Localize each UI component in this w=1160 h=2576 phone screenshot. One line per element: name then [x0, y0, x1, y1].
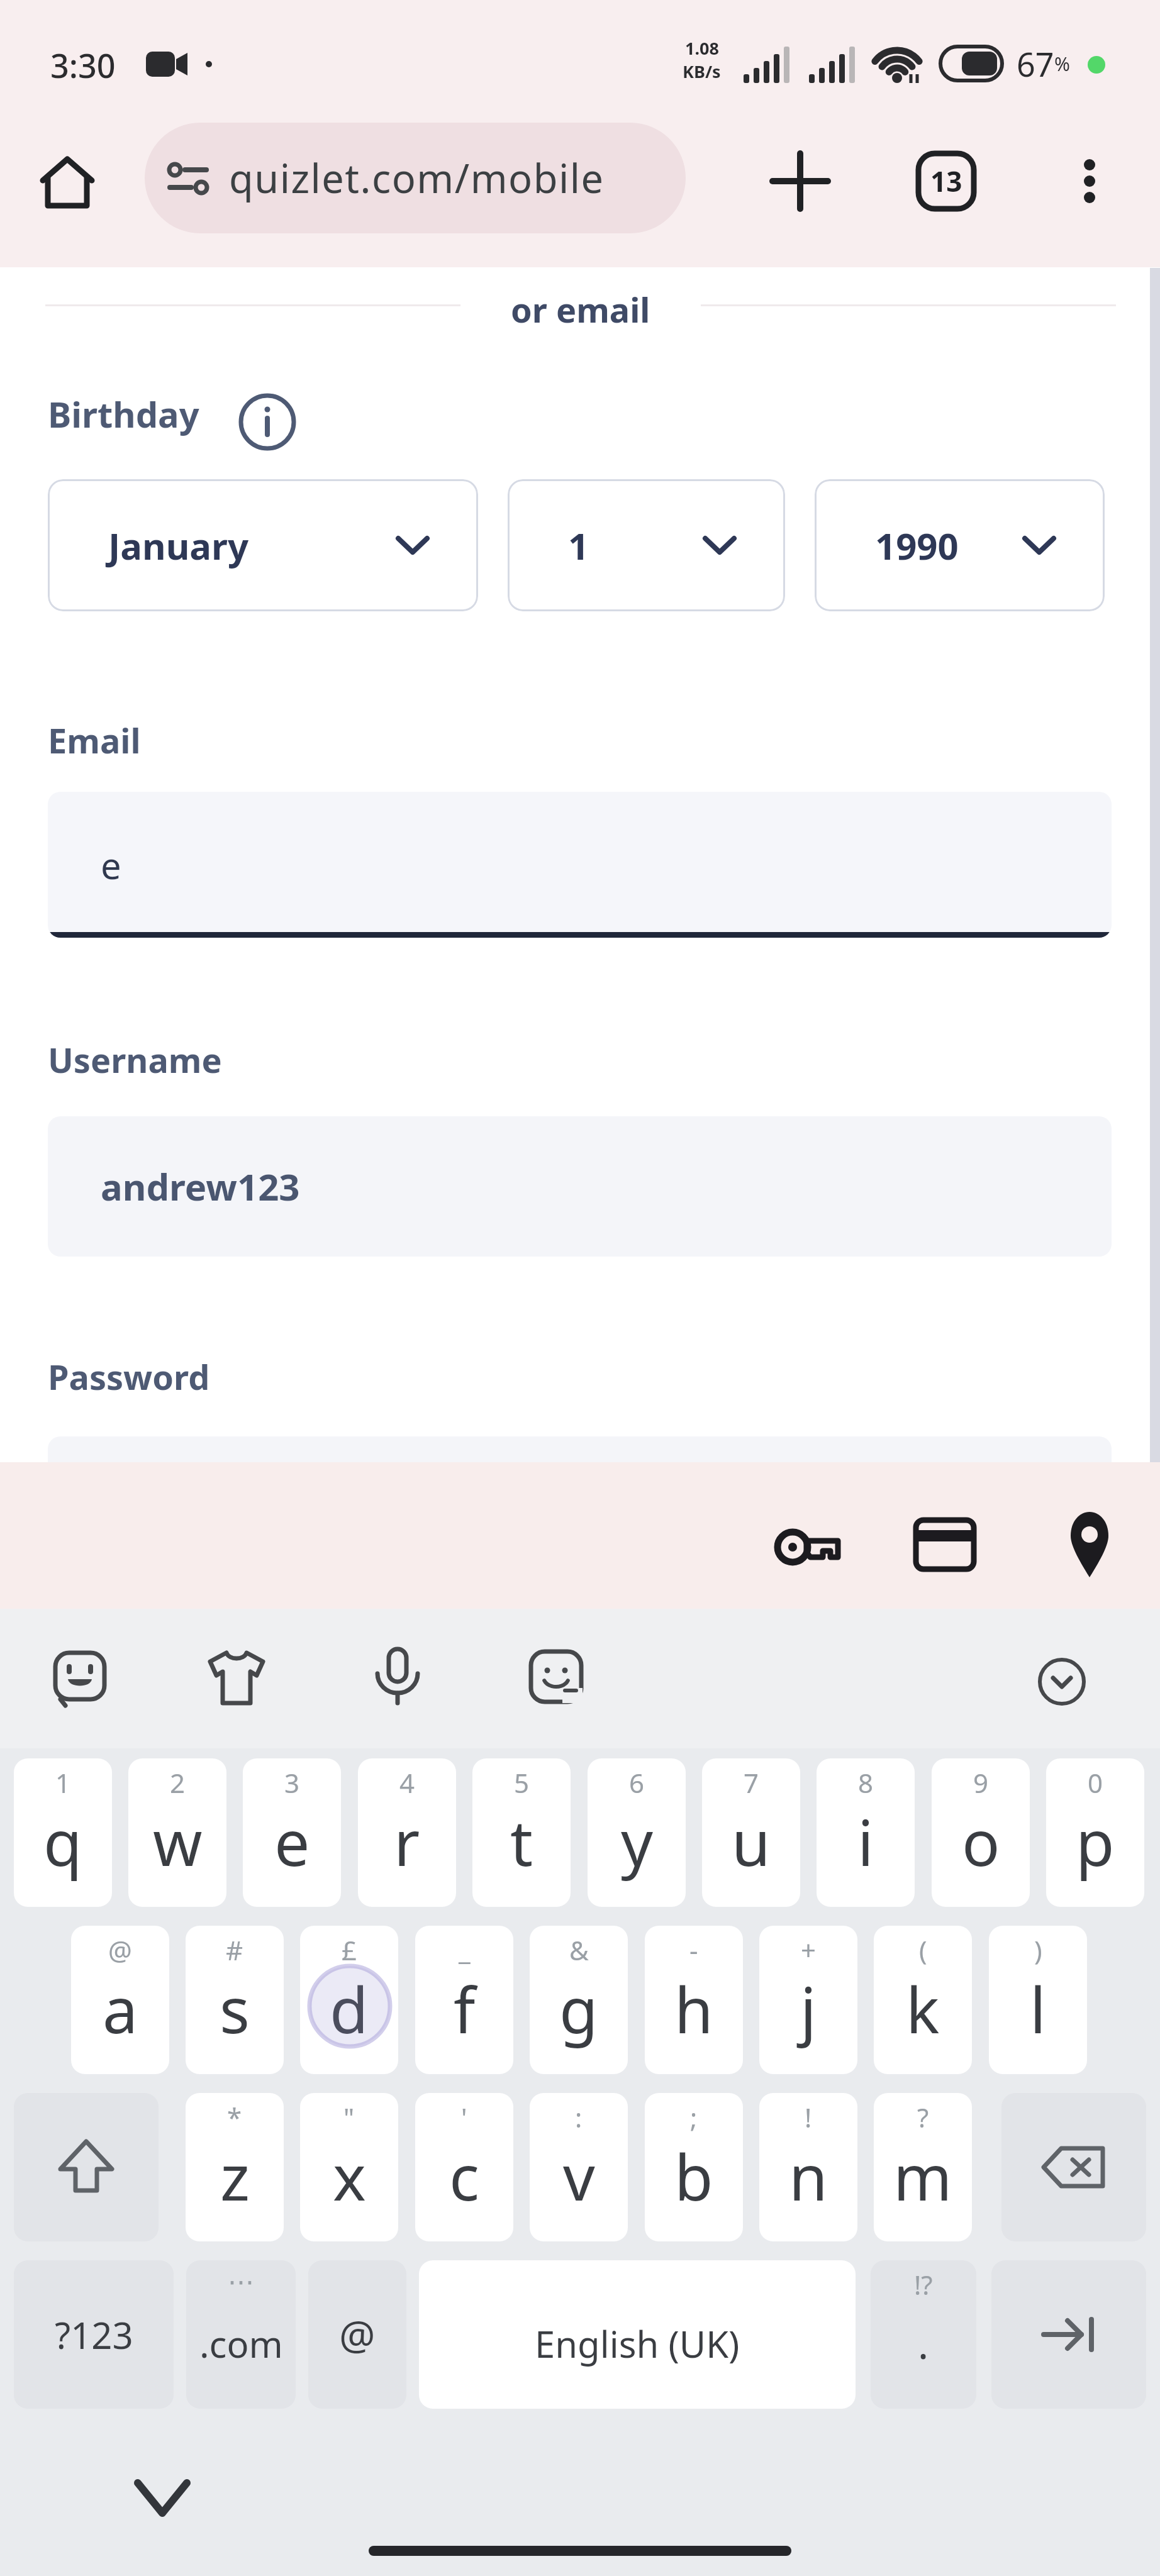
button[interactable]: 5	[472, 1758, 571, 1907]
staticText: w	[153, 1799, 203, 1884]
staticText: u	[732, 1799, 771, 1884]
button[interactable]	[208, 1650, 265, 1706]
staticText: 9	[973, 1765, 989, 1801]
button[interactable]	[1038, 1658, 1086, 1706]
staticText: 3	[284, 1765, 300, 1801]
staticText: 0	[1088, 1765, 1103, 1801]
button[interactable]: quizlet.com/mobile	[145, 123, 686, 233]
staticText: h	[674, 1966, 713, 2051]
button[interactable]: 2	[128, 1758, 226, 1907]
button[interactable]: :	[530, 2093, 628, 2241]
staticText: 1990	[875, 521, 959, 570]
staticText: g	[559, 1966, 598, 2051]
button[interactable]: £	[300, 1926, 398, 2074]
button[interactable]	[1063, 1511, 1116, 1581]
staticText: @	[108, 1932, 132, 1968]
staticText: y	[621, 1799, 653, 1884]
button[interactable]: ?	[874, 2093, 972, 2241]
staticText: &	[569, 1932, 589, 1968]
button[interactable]	[915, 1519, 978, 1572]
button[interactable]	[14, 2093, 159, 2241]
button[interactable]: 9	[932, 1758, 1030, 1907]
staticText: andrew123	[101, 1162, 300, 1211]
staticText: +	[801, 1932, 817, 1968]
staticText: 1	[568, 521, 589, 570]
staticText: v	[563, 2133, 595, 2219]
staticText: e	[274, 1799, 310, 1884]
button[interactable]: ;	[645, 2093, 743, 2241]
button[interactable]: _	[415, 1926, 513, 2074]
button[interactable]: #	[186, 1926, 284, 2074]
button[interactable]: 6	[588, 1758, 686, 1907]
button[interactable]: e	[48, 792, 1112, 938]
button[interactable]: 1	[508, 479, 785, 611]
staticText: b	[674, 2133, 713, 2219]
staticText: .com	[199, 2319, 283, 2368]
button[interactable]: 13	[916, 151, 976, 211]
button[interactable]: '	[415, 2093, 513, 2241]
staticText: '	[461, 2099, 467, 2135]
button[interactable]	[1001, 2093, 1146, 2241]
staticText: :	[575, 2099, 583, 2135]
staticText: @	[339, 2307, 376, 2362]
staticText: quizlet.com/mobile	[229, 151, 605, 205]
staticText: %	[1054, 51, 1070, 77]
button[interactable]	[237, 392, 298, 452]
button[interactable]: &	[530, 1926, 628, 2074]
staticText: f	[454, 1966, 476, 2051]
button[interactable]	[775, 1516, 844, 1579]
staticText: m	[893, 2133, 952, 2219]
button[interactable]: )	[989, 1926, 1087, 2074]
staticText: ;	[690, 2099, 698, 2135]
staticText: x	[333, 2133, 366, 2219]
button[interactable]	[530, 1650, 585, 1706]
staticText: o	[962, 1799, 1000, 1884]
button[interactable]	[38, 154, 101, 212]
staticText: *	[227, 2099, 242, 2135]
staticText: Birthday	[48, 390, 199, 438]
button[interactable]: "	[300, 2093, 398, 2241]
button[interactable]: 8	[817, 1758, 915, 1907]
button[interactable]: ⋯	[186, 2260, 296, 2409]
staticText: )	[1034, 1932, 1042, 1968]
staticText: e	[101, 840, 121, 890]
staticText: d	[330, 1966, 369, 2051]
button[interactable]: English (UK)	[419, 2260, 856, 2409]
button[interactable]: @	[71, 1926, 169, 2074]
staticText: Username	[48, 1036, 222, 1083]
button[interactable]: 1	[14, 1758, 112, 1907]
staticText: .	[918, 2316, 929, 2371]
button[interactable]	[54, 1650, 107, 1708]
button[interactable]: !?	[871, 2260, 976, 2409]
button[interactable]	[133, 2477, 191, 2522]
button[interactable]: 4	[358, 1758, 456, 1907]
button[interactable]: *	[186, 2093, 284, 2241]
button[interactable]: 7	[702, 1758, 800, 1907]
button[interactable]: (	[874, 1926, 972, 2074]
staticText: p	[1076, 1799, 1115, 1884]
button[interactable]: January	[48, 479, 478, 611]
button[interactable]: 1990	[815, 479, 1105, 611]
button[interactable]	[769, 150, 832, 213]
staticText: k	[906, 1966, 940, 2051]
button[interactable]: 0	[1046, 1758, 1144, 1907]
staticText: 1	[55, 1765, 71, 1801]
button[interactable]	[1069, 151, 1120, 211]
button[interactable]: !	[759, 2093, 857, 2241]
staticText: English (UK)	[535, 2319, 740, 2368]
button[interactable]	[375, 1648, 420, 1708]
staticText: Email	[48, 717, 141, 763]
button[interactable]: andrew123	[48, 1116, 1112, 1257]
button[interactable]: 3	[243, 1758, 341, 1907]
button[interactable]: ?123	[14, 2260, 174, 2409]
button[interactable]: -	[645, 1926, 743, 2074]
button[interactable]	[991, 2260, 1146, 2409]
staticText: 1.08	[685, 36, 719, 60]
staticText: 5	[514, 1765, 530, 1801]
button[interactable]: @	[308, 2260, 406, 2409]
staticText: !	[805, 2099, 812, 2135]
staticText: (	[919, 1932, 927, 1968]
staticText: KB/s	[683, 60, 721, 83]
button[interactable]: +	[759, 1926, 857, 2074]
staticText: Password	[48, 1353, 210, 1400]
